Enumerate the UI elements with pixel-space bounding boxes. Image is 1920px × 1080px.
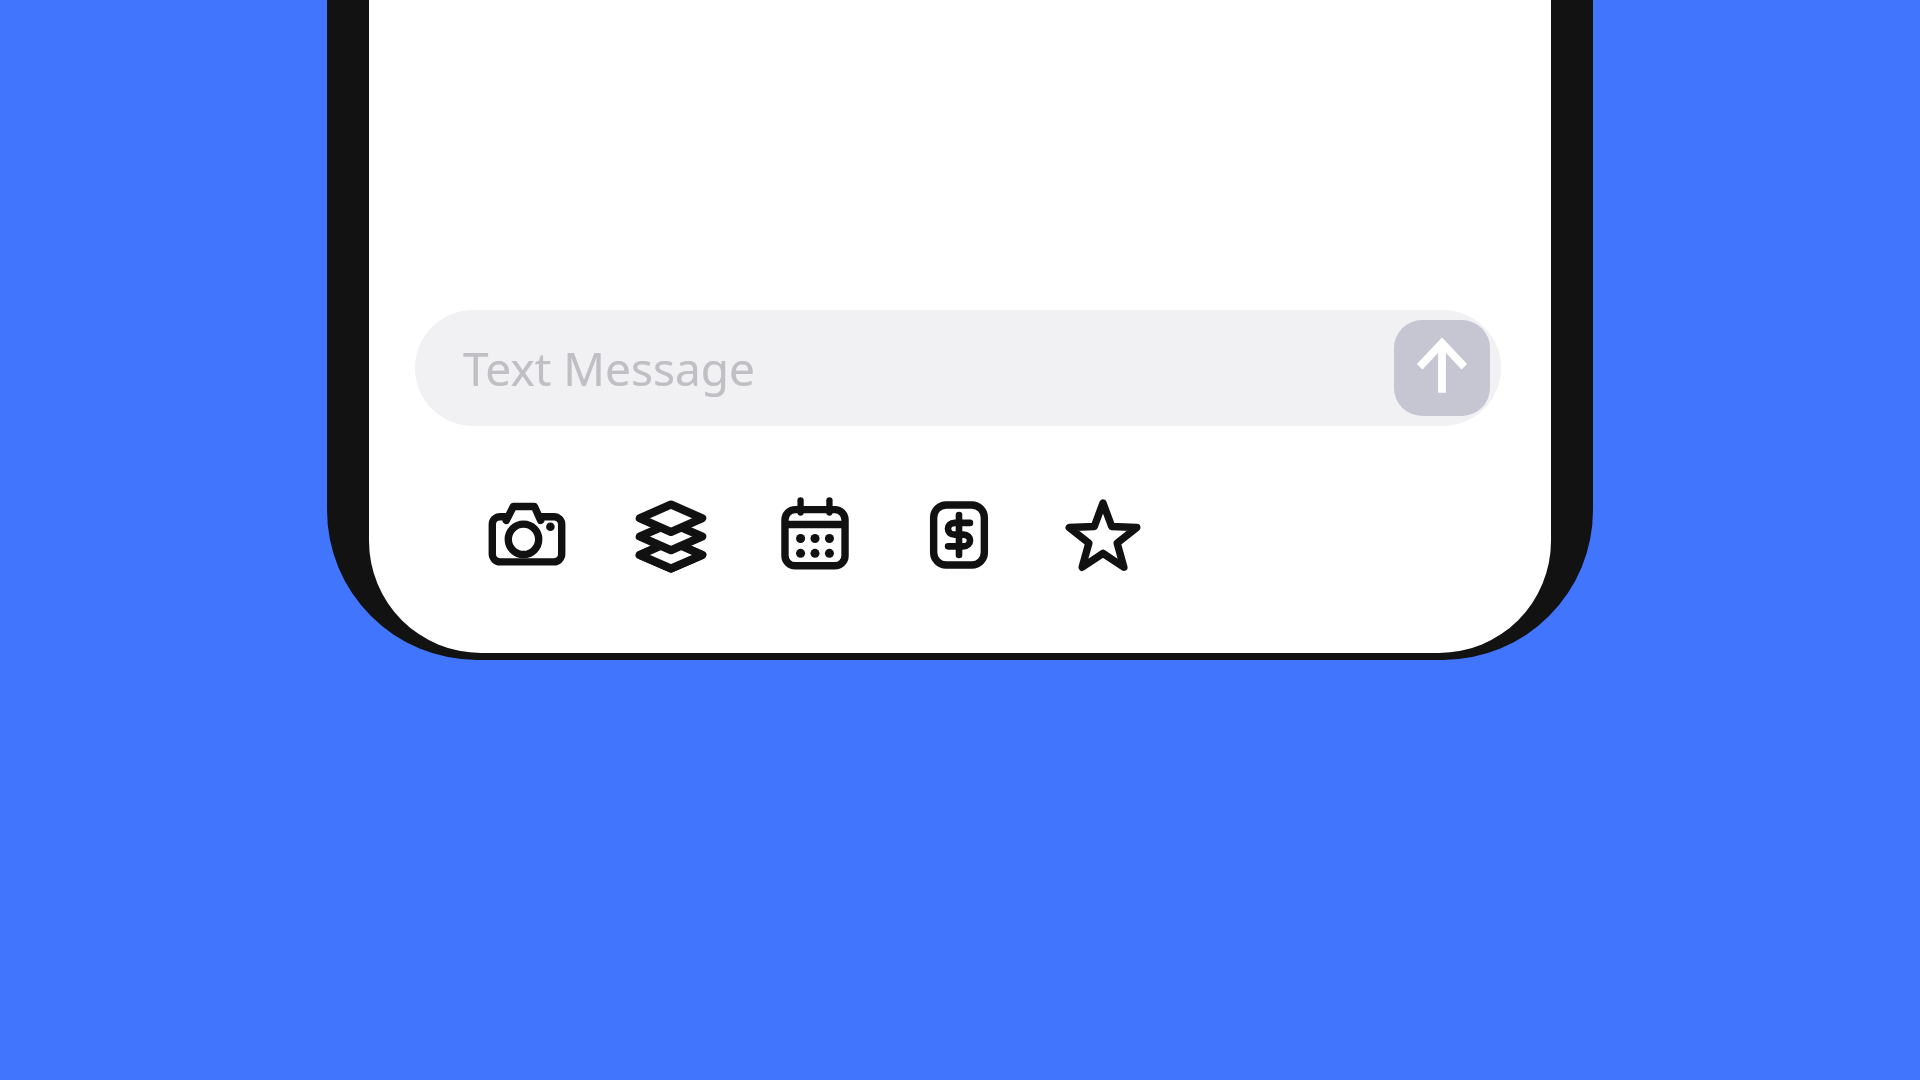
button[interactable]: Calendar: [765, 485, 865, 585]
button[interactable]: Layers: [621, 485, 721, 585]
button[interactable]: Text Message: [415, 310, 1501, 426]
button[interactable]: Send: [1394, 320, 1490, 416]
staticText: Text Message: [463, 337, 756, 400]
button[interactable]: Payments: [909, 485, 1009, 585]
button[interactable]: Favorites: [1053, 485, 1153, 585]
button[interactable]: Camera: [477, 485, 577, 585]
